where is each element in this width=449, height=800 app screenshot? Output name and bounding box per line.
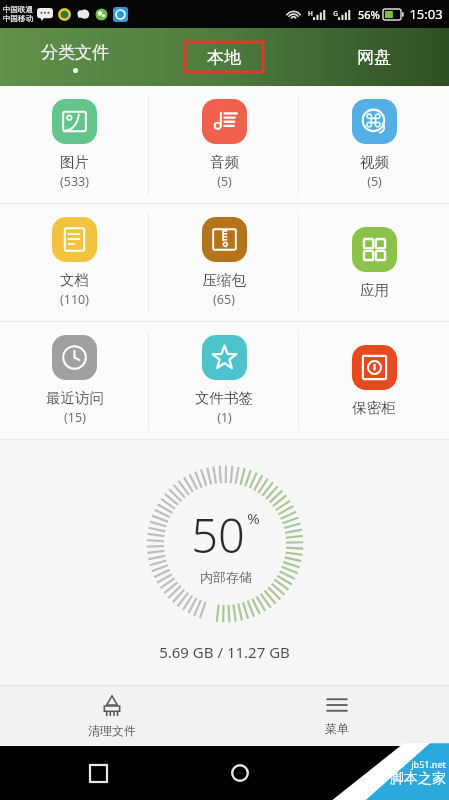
staticText: G bbox=[333, 9, 338, 18]
staticText: jb51.net bbox=[411, 758, 446, 770]
staticText: 最近访问 bbox=[46, 389, 104, 407]
staticText: (5) bbox=[367, 173, 382, 190]
staticText: 5.69 GB / 11.27 GB bbox=[159, 642, 290, 662]
staticText: 清理文件 bbox=[88, 723, 136, 738]
button[interactable]: 最近访问 bbox=[0, 322, 149, 439]
staticText: (1) bbox=[217, 409, 232, 426]
staticText: 应用 bbox=[360, 281, 389, 299]
button[interactable]: 本地 bbox=[149, 28, 299, 86]
button[interactable]: Recents bbox=[77, 752, 119, 794]
staticText: (5) bbox=[217, 173, 232, 190]
staticText: 56% bbox=[358, 7, 380, 22]
button[interactable]: 文件书签 bbox=[149, 322, 299, 439]
staticText: 视频 bbox=[360, 153, 389, 171]
staticText: (533) bbox=[60, 173, 89, 190]
staticText: H bbox=[308, 9, 313, 18]
staticText: 脚本之家 bbox=[390, 770, 446, 788]
staticText: 中国移动 bbox=[3, 14, 33, 23]
button[interactable]: 菜单 bbox=[224, 686, 449, 746]
staticText: (15) bbox=[64, 409, 86, 426]
staticText: 本地 bbox=[207, 47, 241, 68]
staticText: % bbox=[247, 508, 260, 528]
button[interactable]: 清理文件 bbox=[0, 686, 224, 746]
button[interactable]: 网盘 bbox=[299, 28, 449, 86]
button[interactable]: 分类文件 bbox=[0, 28, 149, 86]
button[interactable]: 保密柜 bbox=[299, 322, 449, 439]
staticText: 中国联通 bbox=[3, 5, 33, 14]
staticText: 分类文件 bbox=[41, 42, 109, 63]
staticText: 菜单 bbox=[325, 721, 349, 736]
button[interactable]: 应用 bbox=[299, 204, 449, 321]
staticText: (110) bbox=[60, 291, 89, 308]
button[interactable]: 音频 bbox=[149, 86, 299, 203]
staticText: 15:03 bbox=[409, 5, 443, 23]
staticText: 内部存储 bbox=[200, 569, 252, 585]
staticText: 文件书签 bbox=[195, 389, 253, 407]
staticText: 图片 bbox=[60, 153, 89, 171]
button[interactable]: 文档 bbox=[0, 204, 149, 321]
staticText: 音频 bbox=[210, 153, 239, 171]
staticText: 网盘 bbox=[357, 47, 391, 68]
staticText: (65) bbox=[213, 291, 235, 308]
staticText: 50 bbox=[191, 503, 245, 567]
staticText: 保密柜 bbox=[352, 399, 396, 417]
staticText: 文档 bbox=[60, 271, 89, 289]
button[interactable]: 视频 bbox=[299, 86, 449, 203]
button[interactable]: Home bbox=[219, 752, 261, 794]
staticText: 压缩包 bbox=[202, 271, 246, 289]
button[interactable]: 图片 bbox=[0, 86, 149, 203]
button[interactable]: 压缩包 bbox=[149, 204, 299, 321]
